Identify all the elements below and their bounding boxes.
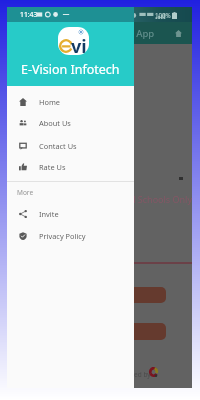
staticText: Privacy Policy (39, 231, 86, 241)
staticText: 11:43 (20, 10, 38, 19)
staticText: For Registered Schools Only (73, 193, 192, 205)
staticText: About Us (39, 118, 71, 128)
button[interactable]: Privacy Policy (7, 225, 134, 247)
staticText: E-Vision App (98, 27, 155, 40)
button[interactable]: Home (172, 27, 185, 40)
staticText: Home (39, 97, 61, 107)
staticText: vi (71, 34, 87, 55)
staticText: Invite (39, 209, 59, 219)
staticText: More (17, 188, 34, 197)
staticText: Contact Us (39, 141, 77, 151)
staticText: E-Vision Infotech (21, 61, 120, 78)
button[interactable]: About Us (7, 112, 134, 134)
staticText: Rate Us (39, 162, 66, 172)
staticText: 100% (155, 11, 171, 19)
button[interactable]: LOGIN (33, 287, 166, 303)
staticText: Powered by (115, 370, 151, 379)
button[interactable]: Invite (7, 203, 134, 225)
button[interactable]: REGISTER (33, 323, 166, 340)
button[interactable]: Home (7, 91, 134, 113)
button[interactable]: Contact Us (7, 135, 134, 157)
button[interactable]: Rate Us (7, 156, 134, 178)
